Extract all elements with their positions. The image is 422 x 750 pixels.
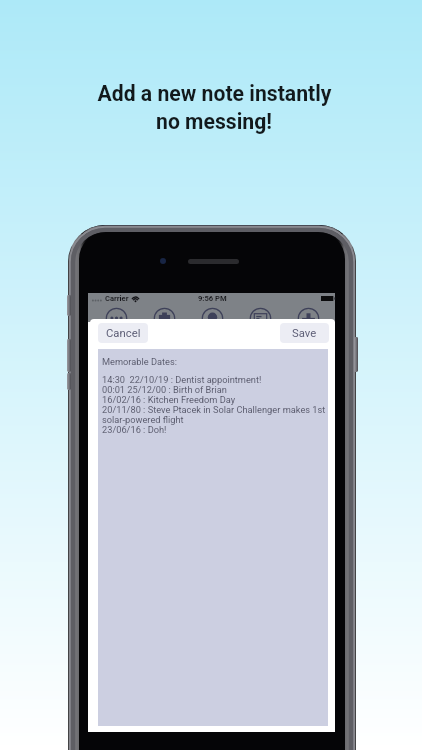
button[interactable]: Help bbox=[201, 307, 224, 330]
staticText: Memorable Dates: bbox=[102, 356, 178, 367]
button[interactable]: Cancel bbox=[98, 323, 148, 343]
staticText: no messing! bbox=[156, 109, 272, 134]
staticText: Add a new note instantly bbox=[97, 81, 332, 106]
button[interactable]: Save bbox=[280, 323, 329, 343]
staticText: 14:30 22/10/19 : Dentist appointment! 00… bbox=[102, 374, 326, 435]
button[interactable]: Attachments bbox=[153, 307, 176, 330]
button[interactable]: More bbox=[105, 307, 128, 330]
staticText: Carrier bbox=[105, 294, 129, 303]
staticText: Cancel bbox=[106, 327, 141, 340]
staticText: 9:56 PM bbox=[198, 294, 227, 303]
staticText: Save bbox=[292, 327, 317, 340]
button[interactable]: Export bbox=[297, 307, 320, 330]
button[interactable]: Notes bbox=[249, 307, 272, 330]
